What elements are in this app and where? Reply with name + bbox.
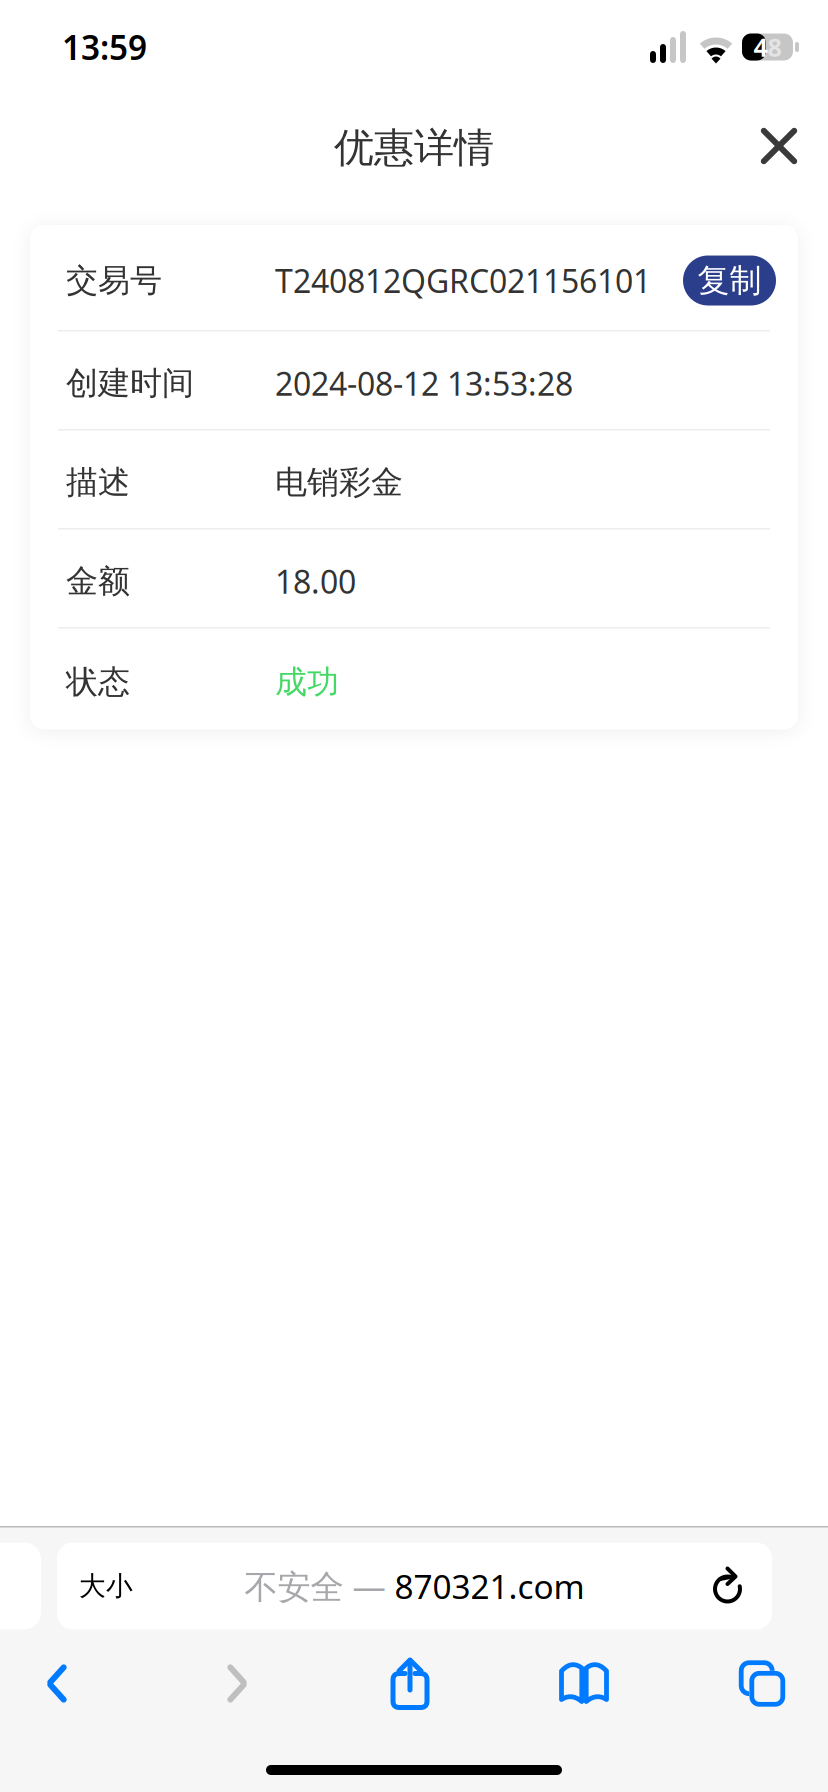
button[interactable]: Close: [743, 110, 815, 182]
staticText: 交易号: [66, 261, 162, 300]
staticText: 创建时间: [66, 364, 194, 403]
button[interactable]: Bookmarks: [527, 1645, 641, 1721]
staticText: 8: [767, 30, 781, 64]
staticText: 不安全 —: [244, 1564, 394, 1608]
staticText: 4: [753, 30, 767, 64]
staticText: 电销彩金: [275, 463, 403, 502]
button[interactable]: Reload: [694, 1543, 762, 1629]
staticText: 2024-08-12 13:53:28: [275, 362, 573, 404]
staticText: 优惠详情: [334, 123, 494, 172]
button[interactable]: Back: [0, 1645, 114, 1721]
button[interactable]: 大小: [67, 1543, 145, 1629]
staticText: T240812QGRC021156101: [275, 259, 651, 302]
staticText: 描述: [66, 463, 130, 502]
button[interactable]: Tabs: [705, 1645, 819, 1721]
staticText: 复制: [697, 261, 761, 300]
staticText: 状态: [66, 662, 130, 702]
button[interactable]: Share: [353, 1645, 467, 1721]
staticText: 13:59: [62, 25, 147, 69]
staticText: 870321.com: [394, 1564, 584, 1608]
staticText: 大小: [79, 1570, 133, 1602]
button[interactable]: Forward: [180, 1645, 294, 1721]
staticText: 金额: [66, 562, 130, 601]
staticText: 18.00: [275, 560, 356, 602]
staticText: 成功: [275, 662, 339, 702]
button[interactable]: 复制: [683, 255, 776, 305]
